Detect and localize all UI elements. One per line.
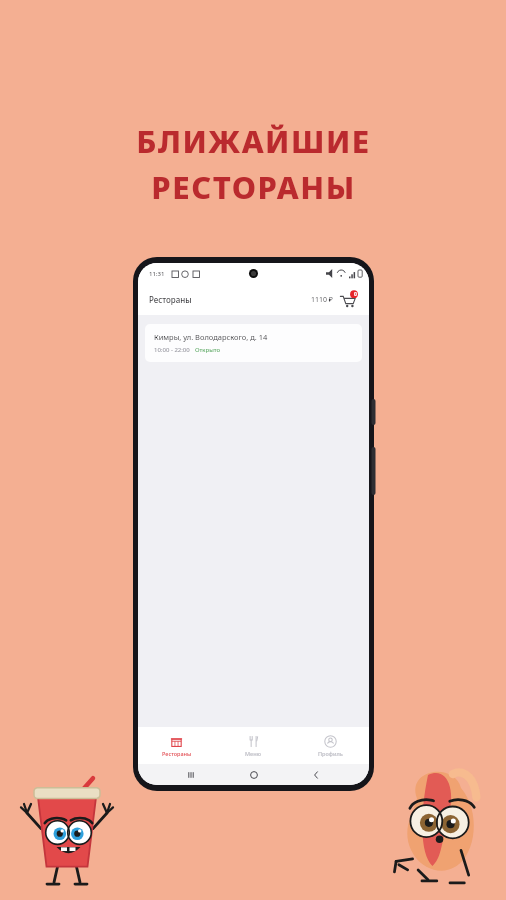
staticText: РЕСТОРАНЫ xyxy=(151,166,356,208)
button[interactable]: Меню xyxy=(215,727,292,764)
button[interactable]: Назад xyxy=(306,765,326,785)
staticText: Рестораны xyxy=(162,750,192,757)
button[interactable]: Домой xyxy=(244,765,264,785)
staticText: Открыто xyxy=(195,346,221,354)
staticText: 0 xyxy=(354,291,357,298)
staticText: 1110 ₽ xyxy=(311,295,333,305)
staticText: Рестораны xyxy=(149,294,192,305)
staticText: Меню xyxy=(245,750,262,757)
staticText: Кимры, ул. Володарского, д. 14 xyxy=(154,332,268,342)
staticText: 10:00 - 22:00 xyxy=(154,346,190,354)
button[interactable]: Недавние приложения xyxy=(181,765,201,785)
staticText: 11:31 xyxy=(149,270,165,278)
staticText: Профиль xyxy=(318,750,343,757)
button[interactable]: Корзина xyxy=(338,290,358,310)
button[interactable]: Кимры, ул. Володарского, д. 14 xyxy=(145,324,362,362)
button[interactable]: Профиль xyxy=(292,727,369,764)
button[interactable]: Рестораны xyxy=(138,727,215,764)
staticText: БЛИЖАЙШИЕ xyxy=(136,120,371,162)
